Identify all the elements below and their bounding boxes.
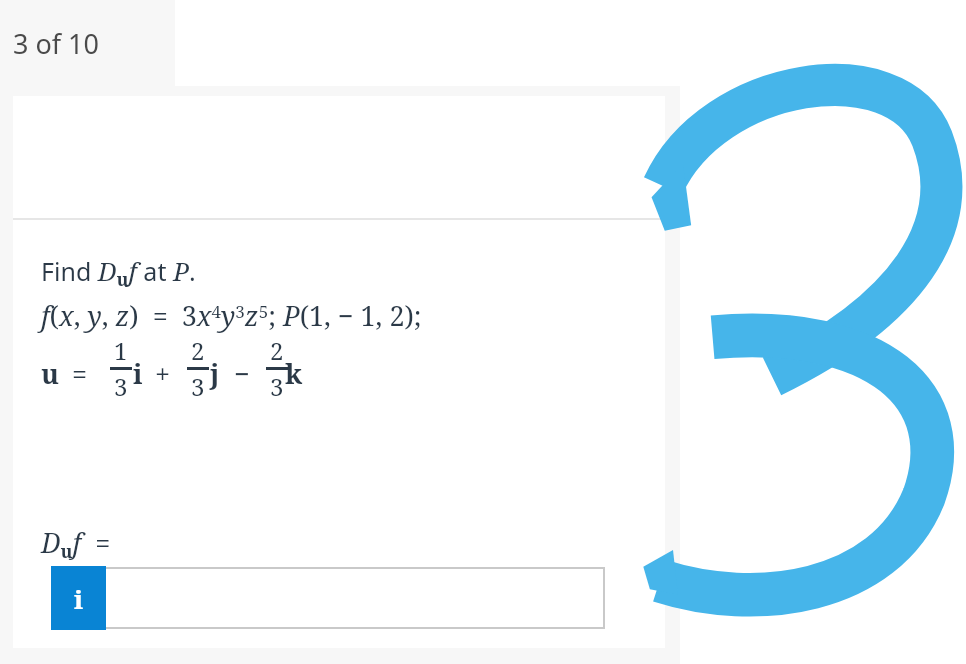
staticText: + [155,355,171,392]
staticText: − [234,355,250,392]
staticText: Duf = [41,524,111,563]
button[interactable]: Information [51,566,106,630]
staticText: 3 of 10 [13,25,99,62]
staticText: i [74,581,84,616]
staticText: 3 [270,370,284,403]
button[interactable] [13,96,665,648]
staticText: = [72,355,88,392]
staticText: 2 [191,334,205,367]
staticText: u [41,355,60,392]
staticText: 2 [270,334,284,367]
staticText: f(x, y, z) = 3x4y3z5; P(1, − 1, 2); [41,297,422,334]
staticText: j [210,355,220,392]
staticText: Find Duf at P. [41,253,196,291]
staticText: 1 [114,334,128,367]
staticText: i [133,355,143,392]
staticText: 3 [114,370,128,403]
staticText: k [285,355,303,392]
staticText: 3 [191,370,205,403]
button[interactable] [51,567,605,629]
